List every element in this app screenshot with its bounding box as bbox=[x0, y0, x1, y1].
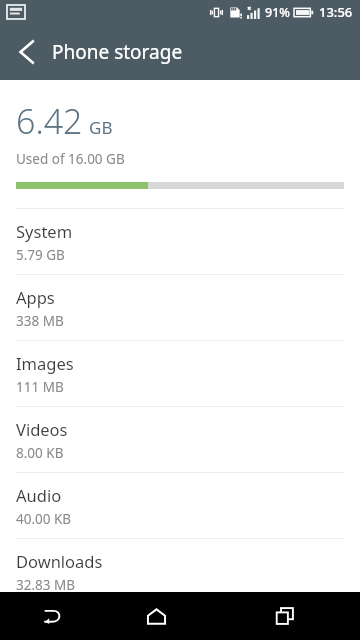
staticText: 338 MB bbox=[16, 312, 64, 330]
button[interactable]: Audio bbox=[0, 473, 360, 538]
staticText: 32.83 MB bbox=[16, 576, 76, 594]
staticText: 111 MB bbox=[16, 378, 64, 396]
button[interactable]: Back bbox=[0, 592, 104, 640]
staticText: Images bbox=[16, 352, 74, 374]
button[interactable]: Videos bbox=[0, 407, 360, 472]
button[interactable]: Images bbox=[0, 341, 360, 406]
staticText: 6.42 bbox=[16, 98, 83, 144]
staticText: Phone storage bbox=[52, 39, 183, 65]
staticText: Downloads bbox=[16, 550, 103, 572]
staticText: System bbox=[16, 220, 73, 242]
staticText: Used of 16.00 GB bbox=[16, 150, 125, 168]
button[interactable]: Downloads bbox=[0, 539, 360, 604]
button[interactable]: System bbox=[0, 209, 360, 274]
staticText: 8.00 KB bbox=[16, 444, 64, 462]
button[interactable]: Recent apps bbox=[209, 592, 360, 640]
staticText: Audio bbox=[16, 484, 62, 506]
staticText: 13:56 bbox=[319, 3, 353, 21]
staticText: GB bbox=[89, 116, 113, 139]
staticText: 91% bbox=[265, 4, 290, 21]
staticText: Apps bbox=[16, 286, 55, 308]
staticText: 40.00 KB bbox=[16, 510, 72, 528]
button[interactable]: Home bbox=[104, 592, 209, 640]
button[interactable]: Apps bbox=[0, 275, 360, 340]
staticText: Videos bbox=[16, 418, 68, 440]
staticText: 5.79 GB bbox=[16, 246, 65, 264]
button[interactable]: Back bbox=[0, 24, 52, 80]
